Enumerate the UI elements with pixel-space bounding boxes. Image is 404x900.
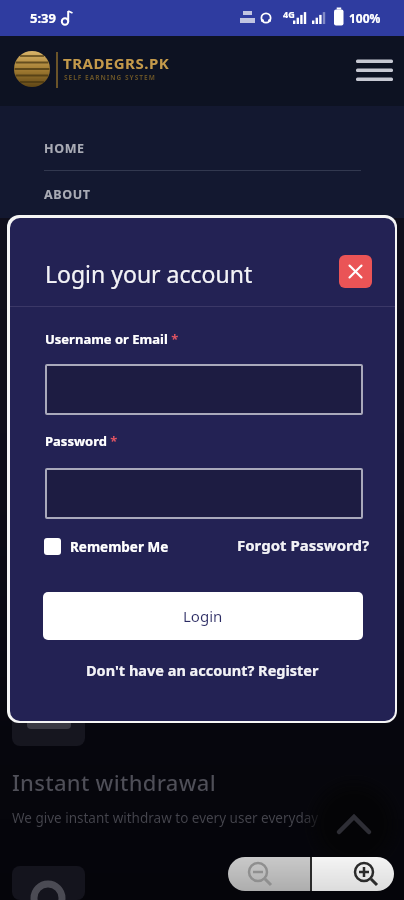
button[interactable]: HOME — [30, 136, 150, 160]
staticText: 100% — [349, 10, 381, 26]
button[interactable] — [326, 796, 382, 852]
staticText: Login your account — [45, 258, 253, 289]
button[interactable] — [350, 51, 398, 91]
staticText: Password * — [45, 432, 118, 450]
button[interactable] — [45, 468, 363, 519]
button[interactable] — [228, 857, 310, 891]
staticText: We give instant withdraw to every user e… — [12, 809, 319, 827]
button[interactable] — [339, 255, 372, 288]
staticText: HOME — [44, 140, 85, 157]
button[interactable]: Don't have an account? Register — [10, 658, 395, 682]
staticText: 5:39 — [30, 9, 56, 27]
staticText: SELF EARNING SYSTEM — [64, 73, 156, 82]
button[interactable]: Login — [43, 592, 363, 640]
button[interactable]: ABOUT — [30, 182, 150, 206]
staticText: Username or Email * — [45, 330, 179, 348]
staticText: Instant withdrawal — [12, 767, 216, 797]
button[interactable]: Remember Me — [44, 536, 174, 558]
button[interactable] — [312, 857, 394, 891]
staticText: Forgot Password? — [237, 535, 370, 555]
button[interactable]: Forgot Password? — [228, 533, 370, 557]
staticText: Remember Me — [70, 538, 169, 556]
staticText: Don't have an account? Register — [86, 660, 319, 680]
staticText: Login — [183, 606, 223, 626]
button[interactable] — [45, 364, 363, 415]
staticText: ABOUT — [44, 186, 91, 203]
staticText: 4G — [283, 8, 295, 20]
staticText: TRADEGRS.PK — [63, 53, 170, 73]
